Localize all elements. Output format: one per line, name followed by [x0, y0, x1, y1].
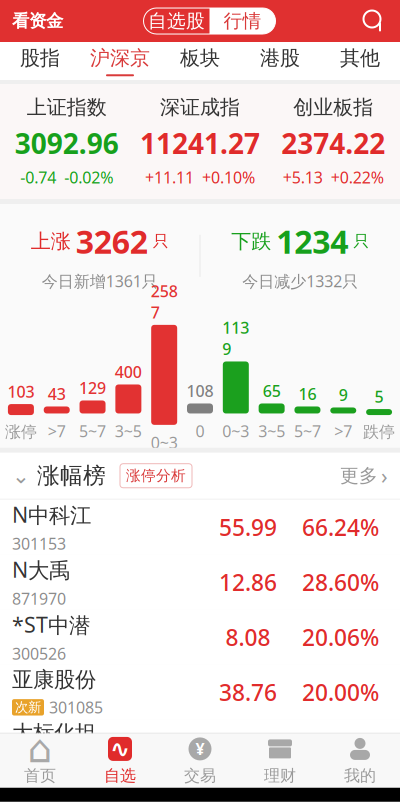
button[interactable]: 涨停分析 — [120, 464, 192, 488]
button[interactable]: ⌂ — [0, 734, 80, 788]
staticText: 20.06% — [302, 622, 379, 652]
staticText: 上证指数 — [27, 95, 107, 120]
button[interactable]: *ST中潜 — [0, 610, 400, 665]
staticText: +0.22% — [331, 167, 384, 188]
staticText: 只 — [353, 231, 369, 251]
button[interactable]: 港股 — [240, 42, 320, 80]
staticText: >7 — [48, 420, 66, 442]
staticText: N大禹 — [12, 555, 70, 584]
button[interactable]: 我的 — [320, 734, 400, 788]
staticText: 43 — [48, 383, 66, 404]
staticText: 2374.22 — [281, 125, 385, 162]
button[interactable]: N大禹 — [0, 555, 400, 610]
staticText: 我的 — [344, 766, 376, 786]
button[interactable]: 看资金 — [0, 2, 63, 40]
button[interactable]: ∿ — [80, 734, 160, 788]
staticText: 20.00% — [302, 677, 379, 707]
staticText: 亚康股份 — [12, 666, 96, 693]
staticText: 8.08 — [225, 622, 270, 652]
staticText: 3~5 — [115, 420, 142, 442]
staticText: 看资金 — [12, 10, 63, 32]
staticText: 55.99 — [219, 512, 277, 542]
staticText: 11241.27 — [140, 125, 260, 162]
staticText: 300526 — [12, 643, 66, 664]
staticText: 0~3 — [151, 432, 178, 453]
staticText: 3~5 — [258, 420, 285, 442]
button[interactable]: 板块 — [160, 42, 240, 80]
button[interactable]: 其他 — [320, 42, 400, 80]
staticText: 其他 — [340, 46, 380, 70]
staticText: 9 — [339, 384, 348, 405]
staticText: 首页 — [24, 766, 56, 786]
staticText: 28.60% — [302, 567, 379, 597]
staticText: 今日新增1361只 — [42, 270, 158, 292]
button[interactable]: 深证成指 — [133, 84, 267, 199]
staticText: 行情 — [223, 9, 261, 32]
staticText: 301085 — [49, 697, 103, 718]
staticText: 66.24% — [302, 512, 379, 542]
button[interactable]: 自选股 — [143, 8, 209, 34]
staticText: 自选 — [104, 766, 136, 786]
button[interactable]: N中科江 — [0, 500, 400, 555]
staticText: 只 — [153, 231, 169, 251]
staticText: 交易 — [184, 766, 216, 786]
staticText: 129 — [79, 377, 106, 398]
staticText: *ST中潜 — [12, 610, 90, 639]
staticText: 港股 — [260, 46, 300, 70]
staticText: 自选股 — [148, 9, 205, 32]
button[interactable]: 更多 — [340, 452, 388, 500]
button[interactable]: 亚康股份 — [0, 665, 400, 720]
staticText: 涨幅榜 — [37, 462, 106, 490]
staticText: -0.74 — [20, 167, 56, 188]
staticText: 0~3 — [222, 420, 249, 442]
staticText: 3262 — [76, 220, 148, 262]
staticText: 股指 — [20, 46, 60, 70]
button[interactable]: 股指 — [0, 42, 80, 80]
button[interactable]: 上证指数 — [0, 84, 133, 199]
staticText: 次新 — [15, 699, 41, 716]
staticText: 理财 — [264, 766, 296, 786]
button[interactable]: 行情 — [209, 8, 275, 34]
staticText: +0.10% — [202, 167, 255, 188]
staticText: ⌂ — [27, 727, 52, 771]
staticText: >7 — [334, 420, 352, 442]
staticText: 103 — [7, 381, 34, 402]
staticText: 今日减少1332只 — [242, 270, 358, 292]
staticText: 创业板指 — [293, 95, 373, 120]
staticText: ∿ — [110, 735, 130, 762]
staticText: 5 — [375, 386, 384, 407]
button[interactable]: 创业板指 — [267, 84, 400, 199]
staticText: 深证成指 — [160, 95, 240, 120]
staticText: 下跌 — [231, 229, 271, 254]
staticText: 108 — [186, 380, 213, 401]
staticText: ⌄ — [12, 464, 30, 488]
staticText: 0 — [195, 420, 204, 442]
staticText: +11.11 — [145, 167, 194, 188]
staticText: 871970 — [12, 588, 66, 609]
staticText: N中科江 — [12, 500, 91, 529]
button[interactable]: 沪深京 — [80, 42, 160, 80]
staticText: 16 — [298, 383, 316, 404]
staticText: 跌停 — [363, 422, 395, 442]
staticText: 400 — [115, 361, 142, 382]
staticText: 大标化坦 — [12, 720, 96, 746]
button[interactable]: 搜索 — [356, 4, 400, 38]
staticText: 12.86 — [219, 567, 277, 597]
staticText: 涨停 — [5, 422, 37, 442]
staticText: 沪深京 — [90, 46, 150, 70]
staticText: 上涨 — [31, 229, 71, 254]
staticText: 1234 — [276, 220, 348, 262]
button[interactable]: ¥ — [160, 734, 240, 788]
button[interactable]: 理财 — [240, 734, 320, 788]
staticText: 2587 — [151, 280, 178, 323]
button[interactable]: ⌄ — [12, 452, 106, 500]
staticText: 更多 — [340, 464, 378, 487]
staticText: 65 — [263, 380, 281, 401]
staticText: 1139 — [222, 317, 249, 359]
staticText: › — [381, 462, 388, 490]
staticText: -0.02% — [64, 167, 113, 188]
staticText: 38.76 — [219, 677, 277, 707]
staticText: 301153 — [12, 533, 66, 554]
staticText: 3092.96 — [15, 125, 119, 162]
staticText: 5~7 — [79, 420, 106, 442]
